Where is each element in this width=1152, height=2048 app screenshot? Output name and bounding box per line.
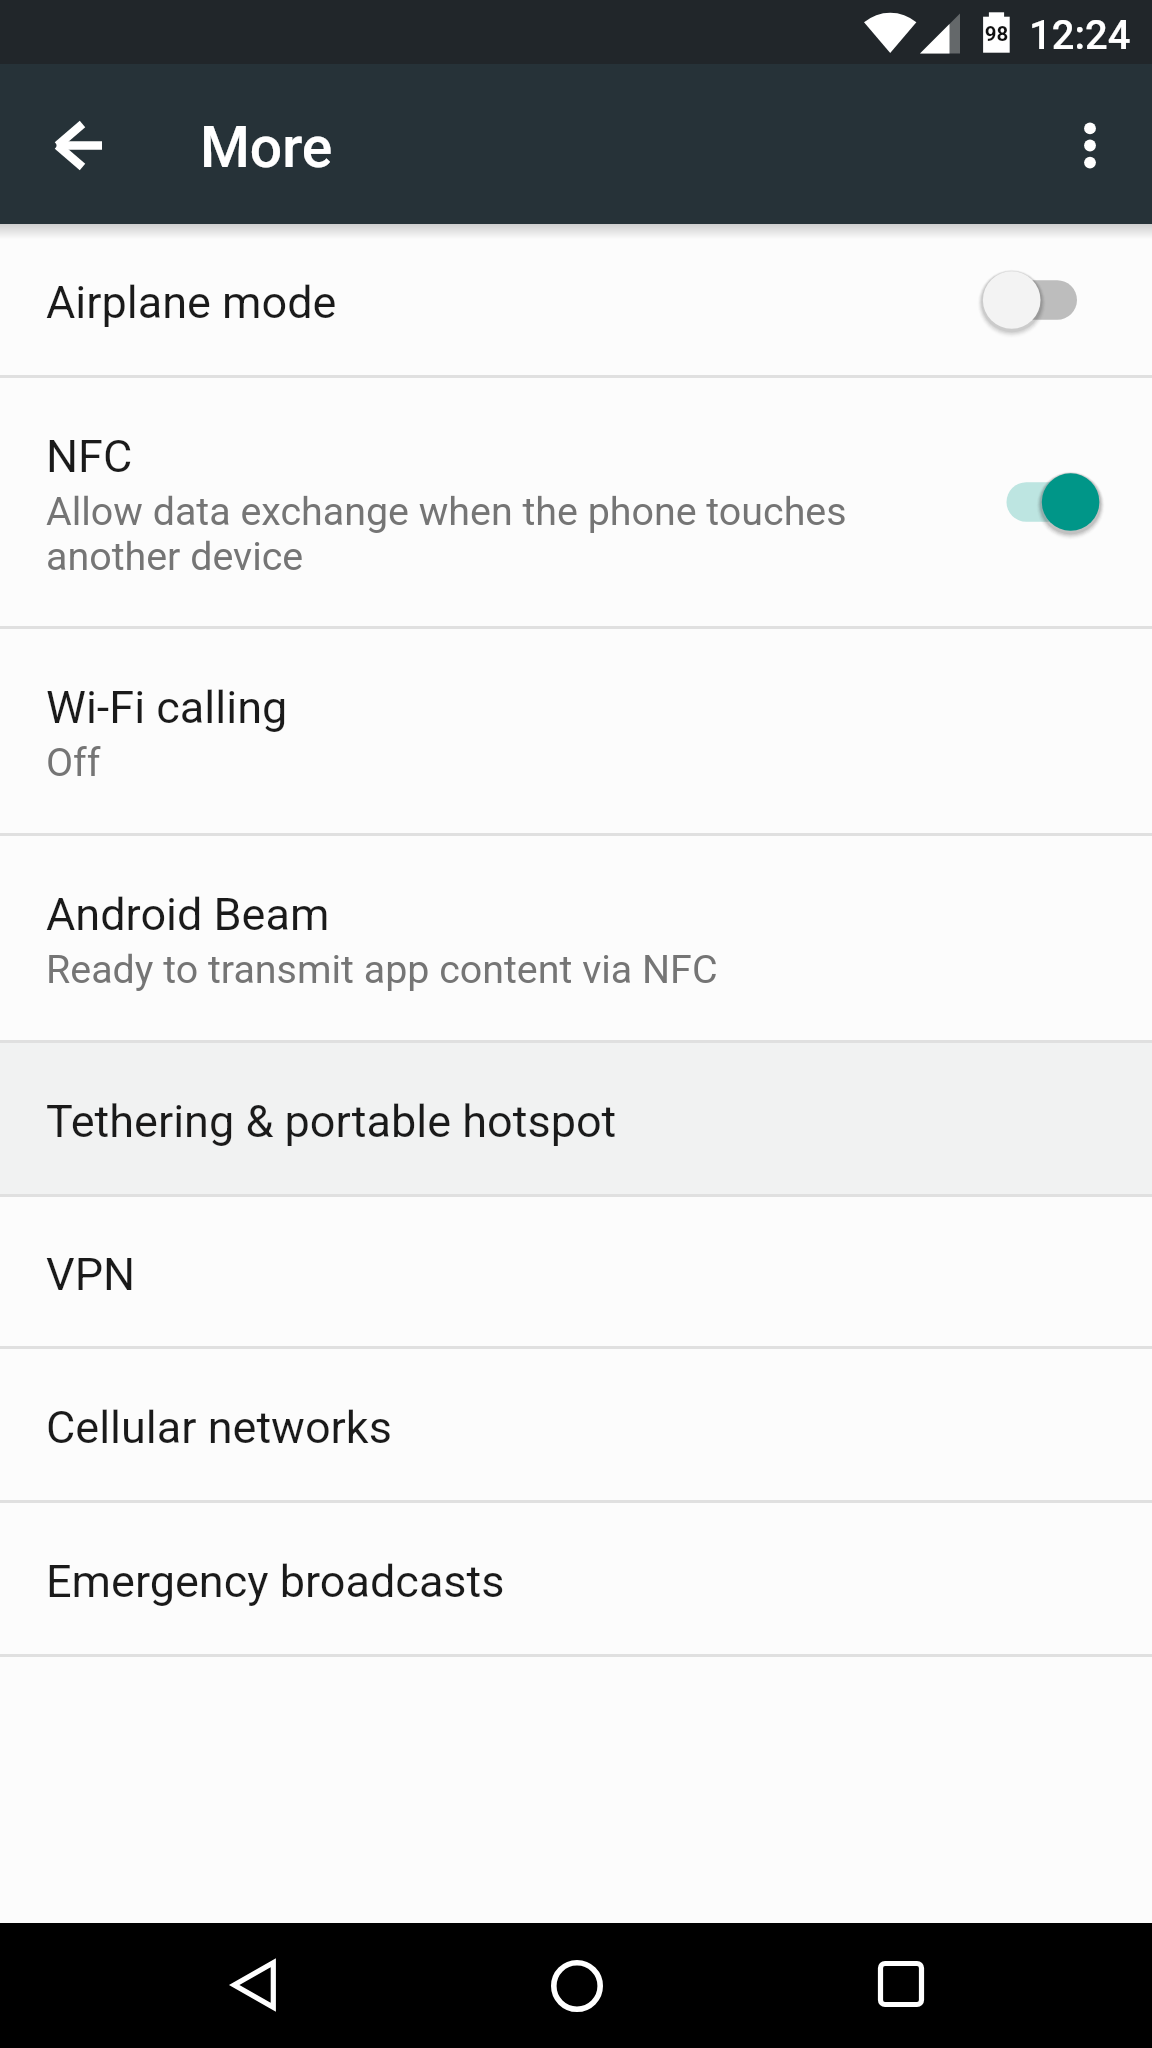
staticText: Airplane mode [46, 276, 337, 329]
staticText: More [200, 114, 333, 181]
staticText: Tethering & portable hotspot [46, 1095, 617, 1148]
staticText: VPN [46, 1248, 136, 1301]
staticText: 98 [983, 22, 1010, 46]
button[interactable]: Recent apps [841, 1926, 961, 2046]
button[interactable]: Cellular networks [0, 1349, 1152, 1500]
button[interactable]: Navigate up [25, 90, 133, 198]
button[interactable]: Tethering & portable hotspot [0, 1043, 1152, 1194]
button[interactable]: Android Beam [0, 836, 1152, 1040]
button[interactable]: Emergency broadcasts [0, 1503, 1152, 1654]
staticText: 12:24 [1029, 12, 1131, 59]
staticText: Wi-Fi calling [46, 681, 288, 734]
staticText: Off [46, 739, 101, 785]
button[interactable]: VPN [0, 1196, 1152, 1346]
staticText: Cellular networks [46, 1401, 392, 1454]
staticText: Android Beam [46, 888, 330, 941]
button[interactable]: Airplane mode [0, 224, 1152, 375]
button[interactable]: Home [517, 1926, 637, 2046]
button[interactable]: More options [1036, 90, 1144, 198]
staticText: Ready to transmit app content via NFC [46, 946, 718, 992]
staticText: NFC [46, 430, 133, 483]
button[interactable]: Back [193, 1926, 313, 2046]
staticText: Emergency broadcasts [46, 1555, 505, 1608]
staticText: Allow data exchange when the phone touch… [46, 488, 847, 580]
button[interactable]: NFC [0, 378, 1152, 626]
button[interactable]: Wi-Fi calling [0, 629, 1152, 833]
